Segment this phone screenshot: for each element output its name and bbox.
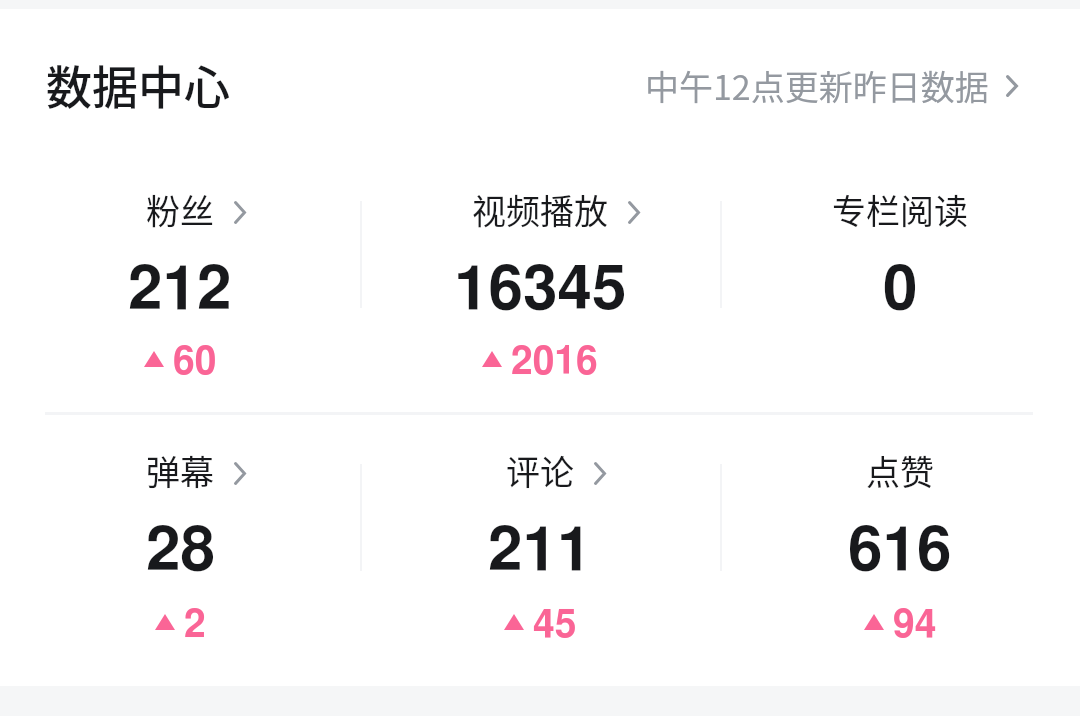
button[interactable]: 中午12点更新昨日数据 xyxy=(645,61,1018,110)
button[interactable]: 专栏阅读 xyxy=(720,9,1080,413)
staticText: 数据中心 xyxy=(46,51,230,118)
staticText: 2 xyxy=(184,606,206,645)
staticText: 评论 xyxy=(506,446,574,495)
staticText: 94 xyxy=(893,606,937,645)
staticText: 16345 xyxy=(454,259,627,321)
staticText: 视频播放 xyxy=(472,185,608,234)
button[interactable]: 点赞 xyxy=(720,415,1080,686)
button[interactable]: 粉丝 xyxy=(0,9,360,413)
button[interactable]: 评论 xyxy=(360,415,720,686)
staticText: 2016 xyxy=(511,343,598,382)
staticText: 弹幕 xyxy=(146,446,214,495)
staticText: 212 xyxy=(128,259,232,321)
staticText: 45 xyxy=(533,606,577,645)
staticText: 中午12点更新昨日数据 xyxy=(645,61,989,110)
staticText: 专栏阅读 xyxy=(832,185,968,234)
button[interactable]: 视频播放 xyxy=(360,9,720,413)
staticText: 616 xyxy=(848,520,952,582)
staticText: 粉丝 xyxy=(146,185,214,234)
staticText: 60 xyxy=(173,343,217,382)
staticText: 211 xyxy=(488,520,592,582)
staticText: 28 xyxy=(146,520,215,582)
button[interactable]: 弹幕 xyxy=(0,415,360,686)
staticText: 0 xyxy=(883,259,918,321)
staticText: 点赞 xyxy=(866,446,934,495)
